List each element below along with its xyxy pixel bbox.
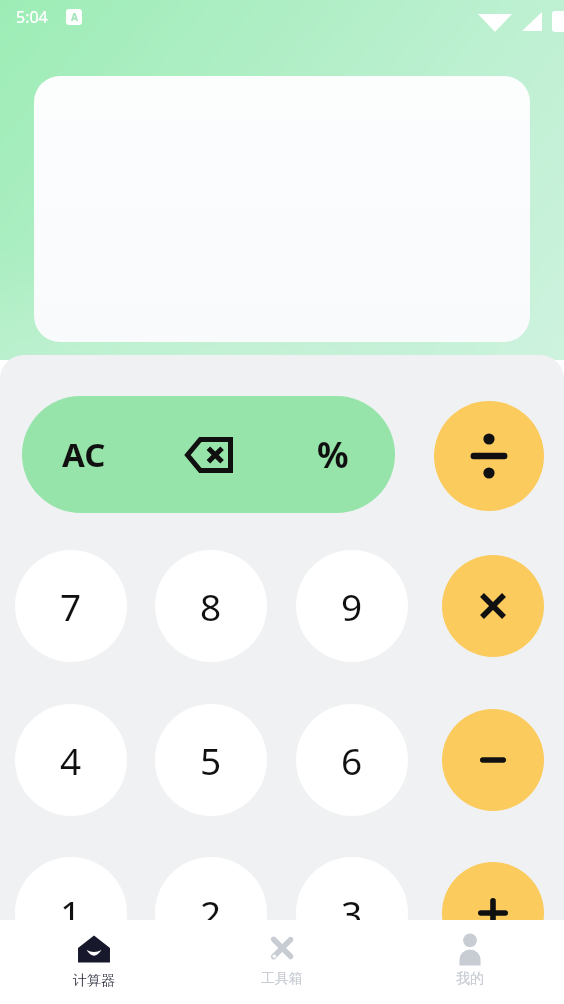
staticText: 4 bbox=[60, 735, 82, 785]
button[interactable]: Backspace bbox=[146, 396, 271, 513]
staticText: A bbox=[71, 10, 78, 24]
button[interactable]: 工具箱 bbox=[188, 920, 376, 1004]
button[interactable]: Multiply bbox=[442, 555, 544, 657]
button[interactable]: 6 bbox=[296, 704, 408, 816]
button[interactable] bbox=[34, 76, 530, 342]
staticText: 8 bbox=[200, 581, 222, 631]
staticText: 5 bbox=[200, 735, 222, 785]
staticText: 7 bbox=[60, 581, 82, 631]
button[interactable]: 8 bbox=[155, 550, 267, 662]
staticText: AC bbox=[62, 432, 106, 477]
button[interactable]: % bbox=[271, 396, 395, 513]
staticText: 2 bbox=[200, 888, 222, 920]
staticText: 5:04 bbox=[16, 6, 48, 28]
staticText: 6 bbox=[341, 735, 363, 785]
staticText: 工具箱 bbox=[261, 970, 303, 988]
staticText: % bbox=[317, 431, 349, 479]
button[interactable]: 7 bbox=[15, 550, 127, 662]
button[interactable]: 1 bbox=[15, 857, 127, 920]
button[interactable]: 9 bbox=[296, 550, 408, 662]
staticText: 计算器 bbox=[73, 972, 115, 990]
staticText: 9 bbox=[341, 581, 363, 631]
button[interactable]: Plus bbox=[442, 862, 544, 920]
button[interactable]: 计算器 bbox=[0, 920, 188, 1004]
button[interactable]: Minus bbox=[442, 709, 544, 811]
staticText: 3 bbox=[341, 888, 363, 920]
button[interactable]: 4 bbox=[15, 704, 127, 816]
button[interactable]: AC bbox=[22, 396, 146, 513]
button[interactable]: 我的 bbox=[376, 920, 564, 1004]
staticText: 我的 bbox=[456, 970, 484, 988]
staticText: 1 bbox=[60, 888, 82, 920]
button[interactable]: 2 bbox=[155, 857, 267, 920]
button[interactable]: 5 bbox=[155, 704, 267, 816]
button[interactable]: 3 bbox=[296, 857, 408, 920]
button[interactable]: Divide bbox=[434, 401, 544, 511]
